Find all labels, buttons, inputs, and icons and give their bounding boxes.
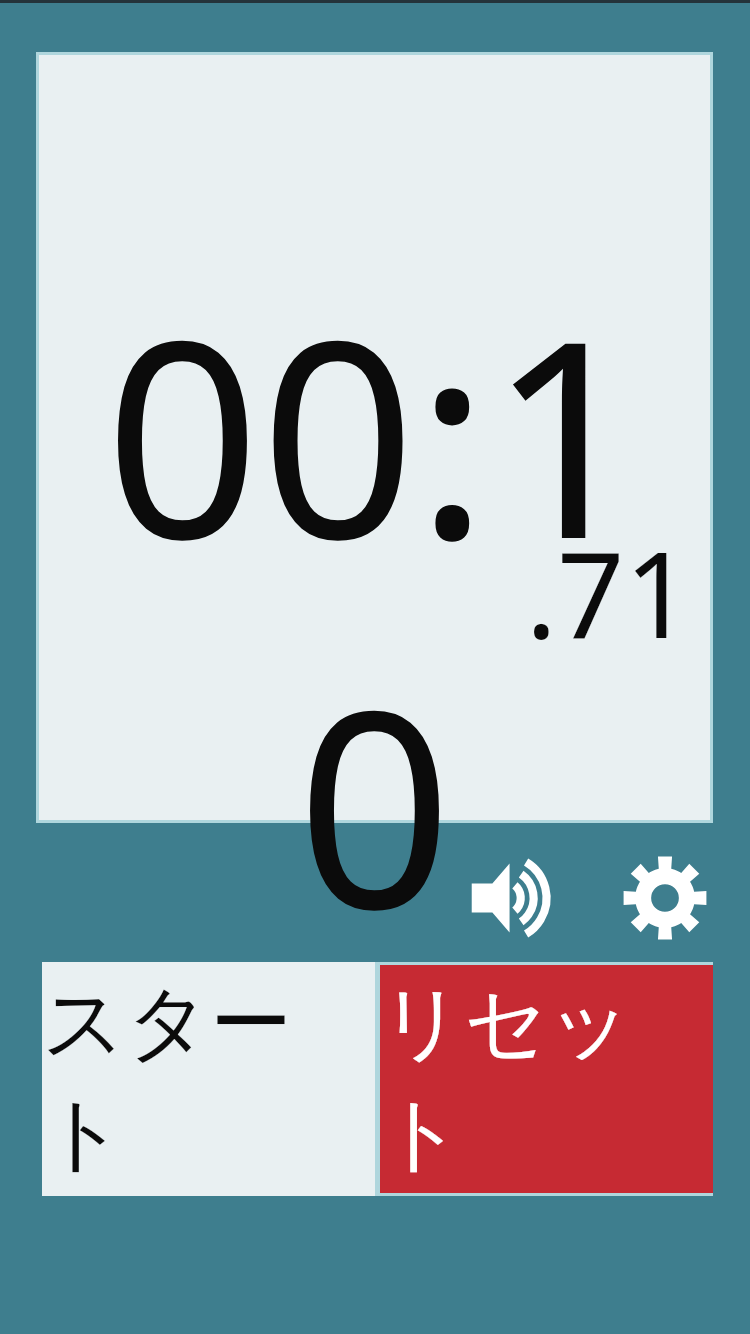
button[interactable]: リセット [380,965,713,1193]
button[interactable]: Sound [461,846,565,950]
staticText: .71 [525,512,692,673]
button[interactable]: スタート [42,962,375,1196]
staticText: 00:10 [39,247,710,987]
staticText: スタート [42,972,375,1186]
button[interactable]: Settings [613,846,717,950]
staticText: リセット [380,972,713,1186]
